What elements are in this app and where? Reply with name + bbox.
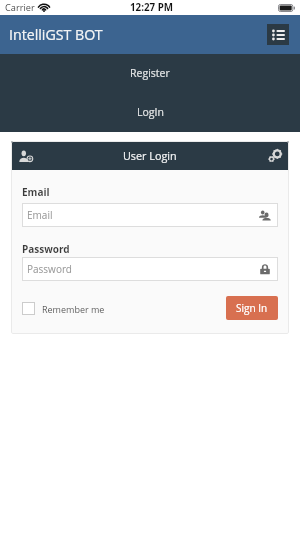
- staticText: Remember me: [42, 303, 105, 315]
- staticText: Email: [22, 185, 50, 199]
- staticText: Sign In: [236, 301, 268, 315]
- staticText: User Login: [123, 148, 177, 163]
- staticText: Password: [22, 242, 70, 256]
- staticText: LogIn: [137, 105, 164, 119]
- button[interactable]: LogIn: [0, 93, 300, 132]
- staticText: Password: [27, 262, 72, 276]
- button[interactable]: Email: [22, 203, 278, 227]
- staticText: Email: [27, 208, 53, 222]
- staticText: 12:27 PM: [130, 1, 174, 14]
- staticText: IntelliGST BOT: [9, 25, 103, 44]
- staticText: Register: [130, 66, 170, 80]
- button[interactable]: Register: [0, 54, 300, 93]
- button[interactable]: Sign In: [226, 296, 278, 320]
- button[interactable]: Remember me: [22, 302, 105, 315]
- button[interactable]: Password: [22, 257, 278, 281]
- staticText: Carrier: [5, 1, 35, 14]
- button[interactable]: Menu: [267, 24, 289, 45]
